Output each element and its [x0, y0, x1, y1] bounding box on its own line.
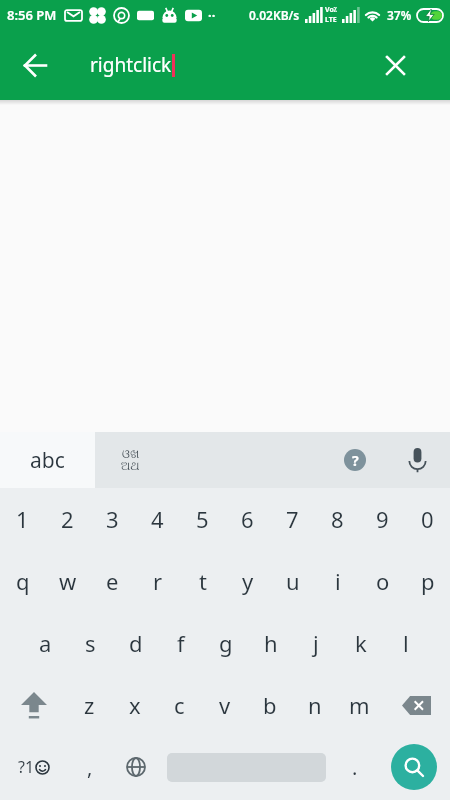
button[interactable]	[367, 37, 423, 93]
button[interactable]: d	[113, 612, 158, 674]
button[interactable]: v	[202, 674, 247, 736]
button[interactable]	[377, 736, 450, 798]
button[interactable]: ଓଖ	[121, 448, 140, 472]
staticText: a	[39, 628, 52, 658]
button[interactable]: w	[45, 550, 90, 612]
button[interactable]: f	[158, 612, 203, 674]
button[interactable]: q	[0, 550, 45, 612]
button[interactable]: 3	[90, 488, 135, 550]
staticText: r	[153, 566, 163, 596]
staticText: 37%	[387, 7, 412, 23]
button[interactable]: e	[90, 550, 135, 612]
button[interactable]: x	[112, 674, 157, 736]
button[interactable]: u	[270, 550, 315, 612]
button[interactable]: 8	[315, 488, 360, 550]
staticText: y	[242, 566, 254, 596]
staticText: ଓଖ	[122, 448, 140, 460]
staticText: b	[263, 690, 277, 720]
staticText: t	[199, 566, 207, 596]
button[interactable]	[0, 37, 70, 93]
staticText: i	[335, 566, 341, 596]
button[interactable]: r	[135, 550, 180, 612]
staticText: x	[129, 690, 141, 720]
staticText: ଅଥ	[121, 460, 140, 472]
button[interactable]: n	[292, 674, 337, 736]
staticText: 9	[376, 504, 389, 534]
staticText: .	[352, 754, 358, 781]
staticText: 3	[106, 504, 119, 534]
button[interactable]	[112, 736, 160, 798]
staticText: 1	[16, 504, 29, 534]
staticText: v	[219, 690, 231, 720]
staticText: g	[219, 628, 233, 658]
button[interactable]	[160, 736, 332, 798]
button[interactable]: a	[23, 612, 68, 674]
staticText: w	[59, 566, 77, 596]
button[interactable]: 2	[45, 488, 90, 550]
staticText: e	[106, 566, 119, 596]
button[interactable]: g	[203, 612, 248, 674]
staticText: 4	[151, 504, 164, 534]
staticText: d	[129, 628, 143, 658]
staticText: ?	[352, 451, 359, 470]
staticText: m	[349, 690, 370, 720]
button[interactable]	[382, 674, 450, 736]
staticText: 7	[286, 504, 299, 534]
button[interactable]: 1	[0, 488, 45, 550]
button[interactable]: 0	[405, 488, 450, 550]
button[interactable]: ,	[67, 736, 112, 798]
staticText: f	[177, 628, 185, 658]
staticText: 2	[61, 504, 74, 534]
staticText: z	[84, 690, 95, 720]
staticText: s	[85, 628, 96, 658]
staticText: o	[376, 566, 390, 596]
staticText: abc	[30, 446, 65, 475]
staticText: h	[264, 628, 278, 658]
staticText: 8:56 PM	[7, 6, 57, 24]
button[interactable]: o	[360, 550, 405, 612]
button[interactable]: 9	[360, 488, 405, 550]
button[interactable]: 4	[135, 488, 180, 550]
staticText: 0.02KB/s	[249, 7, 300, 23]
staticText: rightclick	[90, 52, 172, 78]
button[interactable]: ?	[335, 440, 375, 480]
staticText: 0	[421, 504, 434, 534]
button[interactable]: m	[337, 674, 382, 736]
button[interactable]: h	[248, 612, 293, 674]
button[interactable]: b	[247, 674, 292, 736]
staticText: ,	[87, 754, 93, 781]
button[interactable]: p	[405, 550, 450, 612]
button[interactable]: ?1	[0, 736, 67, 798]
button[interactable]: y	[225, 550, 270, 612]
staticText: Vo⁒	[325, 5, 337, 15]
button[interactable]: k	[338, 612, 383, 674]
staticText: 6	[241, 504, 254, 534]
staticText: u	[286, 566, 300, 596]
button[interactable]: .	[332, 736, 377, 798]
staticText: ··	[208, 6, 216, 24]
button[interactable]: c	[157, 674, 202, 736]
staticText: ?1	[18, 756, 35, 778]
button[interactable]: 7	[270, 488, 315, 550]
staticText: k	[355, 628, 367, 658]
button[interactable]: z	[67, 674, 112, 736]
button[interactable]: j	[293, 612, 338, 674]
button[interactable]: t	[180, 550, 225, 612]
button[interactable]: abc	[0, 432, 95, 488]
staticText: l	[403, 628, 409, 658]
button[interactable]	[0, 674, 67, 736]
button[interactable]	[397, 440, 437, 480]
staticText: j	[313, 628, 319, 658]
button[interactable]: 6	[225, 488, 270, 550]
staticText: c	[174, 690, 185, 720]
staticText: 5	[196, 504, 209, 534]
button[interactable]: s	[68, 612, 113, 674]
staticText: n	[308, 690, 322, 720]
staticText: 8	[331, 504, 344, 534]
button[interactable]: 5	[180, 488, 225, 550]
button[interactable]: i	[315, 550, 360, 612]
staticText: q	[16, 566, 30, 596]
staticText: p	[421, 566, 435, 596]
staticText: LTE	[325, 15, 337, 25]
button[interactable]: l	[383, 612, 428, 674]
